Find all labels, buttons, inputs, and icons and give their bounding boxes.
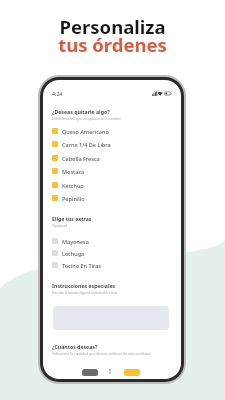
staticText: 4:24 <box>52 90 63 97</box>
button[interactable]: Lechuga <box>52 247 152 259</box>
staticText: 1 <box>108 367 112 376</box>
button[interactable]: Pepinillo <box>52 192 152 204</box>
staticText: Mayonesa <box>62 238 89 245</box>
staticText: Pepinillo <box>62 195 85 202</box>
button[interactable]: Carne 1/4 De Libra <box>52 138 152 150</box>
staticText: ¿Cuántos deseas? <box>52 343 98 350</box>
button[interactable]: Quitar uno <box>82 369 98 376</box>
button[interactable]: Agregar uno <box>124 369 140 376</box>
staticText: Cebolla Fresca <box>62 155 100 162</box>
staticText: Personaliza tus órdenes <box>0 14 225 58</box>
staticText: Mostaza <box>62 168 85 175</box>
staticText: Instrucciones especiales <box>52 282 116 289</box>
button[interactable]: Queso Americano <box>52 125 152 137</box>
staticText: Carne 1/4 De Libra <box>62 141 111 148</box>
button[interactable]: Cebolla Fresca <box>52 152 152 164</box>
button[interactable]: Mayonesa <box>52 235 152 247</box>
staticText: Opcional <box>52 223 67 228</box>
button[interactable]: Tocino En Tiras <box>52 259 152 271</box>
staticText: Queso Americano <box>62 128 109 135</box>
staticText: Escribe si tienes alguna indicación extr… <box>52 290 118 295</box>
staticText: Lechuga <box>62 250 85 257</box>
staticText: Elige tus extras <box>52 215 92 222</box>
staticText: Selecciona la cantidad que deseas ordena… <box>52 351 151 356</box>
staticText: Selecciona los que no quieres en tu orde… <box>52 116 121 121</box>
staticText: Ketchup <box>62 182 84 189</box>
button[interactable]: Mostaza <box>52 165 152 177</box>
staticText: Tocino En Tiras <box>62 262 102 269</box>
button[interactable]: Ketchup <box>52 179 152 191</box>
staticText: ¿Deseas quitarle algo? <box>52 108 110 115</box>
